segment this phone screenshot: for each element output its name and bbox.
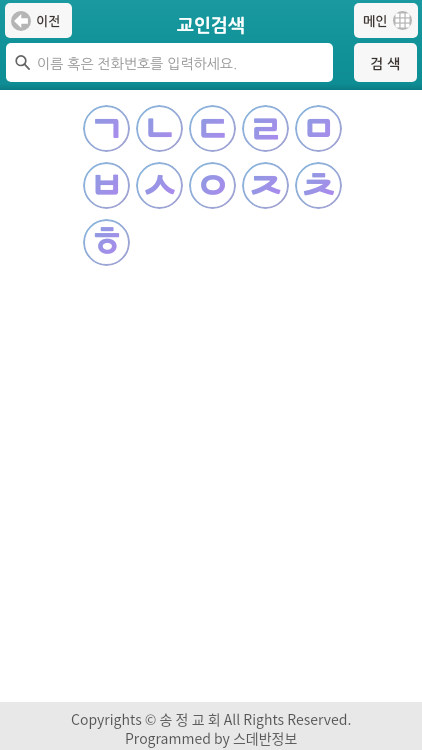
staticText: ㅅ: [140, 162, 180, 209]
staticText: ㅊ: [299, 162, 339, 209]
button[interactable]: 메인: [354, 3, 418, 38]
staticText: ㅎ: [87, 219, 127, 266]
button[interactable]: ㅁ: [295, 105, 342, 152]
staticText: 메인: [363, 15, 388, 28]
staticText: 교인검색: [177, 17, 245, 35]
button[interactable]: ㄷ: [189, 105, 236, 152]
button[interactable]: ㅂ: [83, 162, 130, 209]
staticText: ㄱ: [87, 105, 127, 152]
staticText: 이름 혹은 전화번호를 입력하세요.: [37, 57, 238, 71]
staticText: ㅁ: [299, 105, 339, 152]
button[interactable]: ㄹ: [242, 105, 289, 152]
other: Back: [11, 11, 31, 31]
staticText: Programmed by 스데반정보: [125, 728, 298, 748]
button[interactable]: ㅊ: [295, 162, 342, 209]
button[interactable]: 이름 혹은 전화번호를 입력하세요.: [6, 43, 333, 82]
staticText: ㄹ: [246, 105, 286, 152]
button[interactable]: ㅈ: [242, 162, 289, 209]
staticText: ㅇ: [193, 162, 233, 209]
button[interactable]: ㄱ: [83, 105, 130, 152]
staticText: 이전: [36, 15, 61, 28]
button[interactable]: 검 색: [354, 43, 417, 82]
staticText: Copyrights © 송 정 교 회 All Rights Reserved…: [71, 709, 352, 729]
button[interactable]: ㄴ: [136, 105, 183, 152]
staticText: ㄴ: [140, 105, 180, 152]
button[interactable]: Back: [5, 3, 72, 38]
staticText: ㄷ: [193, 105, 233, 152]
staticText: 검 색: [370, 57, 401, 71]
button[interactable]: ㅎ: [83, 219, 130, 266]
button[interactable]: ㅅ: [136, 162, 183, 209]
staticText: ㅈ: [246, 162, 286, 209]
other: Main menu: [393, 11, 412, 30]
staticText: ㅂ: [87, 162, 127, 209]
button[interactable]: ㅇ: [189, 162, 236, 209]
